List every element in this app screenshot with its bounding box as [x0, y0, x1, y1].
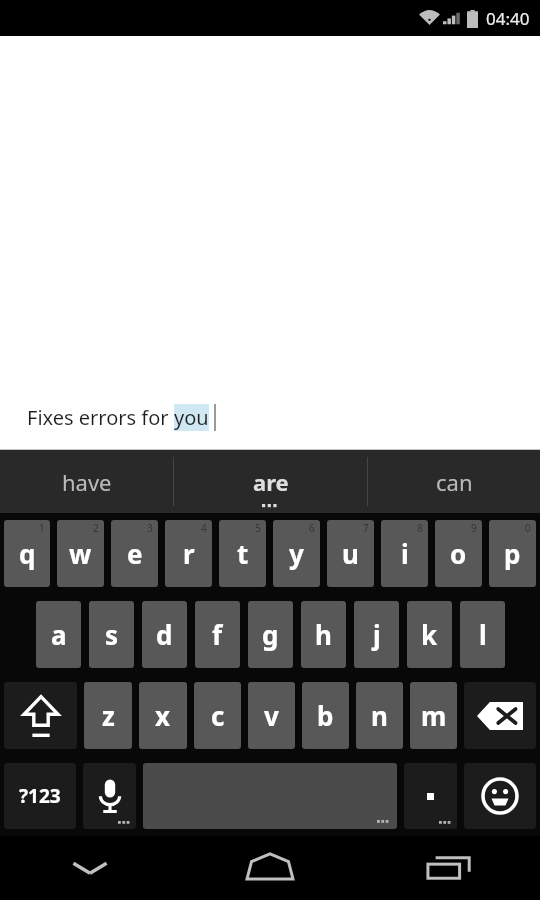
button[interactable]: s: [89, 601, 134, 668]
staticText: j: [373, 617, 381, 652]
staticText: e: [127, 536, 143, 571]
button[interactable]: m: [410, 682, 457, 749]
staticText: have: [62, 467, 112, 497]
staticText: 2: [93, 521, 99, 535]
button[interactable]: w: [57, 520, 104, 587]
button[interactable]: are: [174, 450, 367, 513]
staticText: m: [421, 698, 447, 733]
button[interactable]: v: [248, 682, 295, 749]
button[interactable]: h: [301, 601, 346, 668]
staticText: 5: [255, 521, 261, 535]
button[interactable]: Home: [180, 836, 360, 900]
staticText: r: [183, 536, 195, 571]
staticText: c: [211, 698, 225, 733]
staticText: q: [19, 536, 36, 571]
staticText: p: [504, 536, 521, 571]
button[interactable]: c: [194, 682, 241, 749]
staticText: 7: [363, 521, 369, 535]
button[interactable]: [404, 763, 457, 829]
button[interactable]: Recent apps: [360, 836, 540, 900]
staticText: 9: [471, 521, 477, 535]
staticText: a: [51, 617, 67, 652]
staticText: w: [69, 536, 92, 571]
button[interactable]: f: [195, 601, 240, 668]
button[interactable]: i: [381, 520, 428, 587]
button[interactable]: Shift: [4, 682, 77, 749]
button[interactable]: have: [0, 450, 173, 513]
staticText: u: [342, 536, 359, 571]
staticText: y: [289, 536, 304, 571]
staticText: h: [315, 617, 332, 652]
button[interactable]: r: [165, 520, 212, 587]
button[interactable]: a: [36, 601, 81, 668]
staticText: are: [253, 467, 289, 497]
button[interactable]: Emoji: [464, 763, 536, 829]
staticText: you: [174, 404, 209, 431]
staticText: 6: [309, 521, 315, 535]
button[interactable]: Space: [143, 763, 397, 829]
button[interactable]: t: [219, 520, 266, 587]
button[interactable]: l: [460, 601, 505, 668]
button[interactable]: ?123: [4, 763, 76, 829]
staticText: 1: [39, 521, 45, 535]
staticText: v: [264, 698, 279, 733]
staticText: g: [262, 617, 279, 652]
button[interactable]: g: [248, 601, 293, 668]
button[interactable]: b: [302, 682, 349, 749]
button[interactable]: Voice input: [83, 763, 136, 829]
button[interactable]: Hide keyboard: [0, 836, 180, 900]
button[interactable]: j: [354, 601, 399, 668]
staticText: n: [371, 698, 388, 733]
button[interactable]: can: [368, 450, 540, 513]
staticText: f: [212, 617, 223, 652]
staticText: s: [105, 617, 119, 652]
button[interactable]: d: [142, 601, 187, 668]
button[interactable]: k: [407, 601, 452, 668]
staticText: l: [479, 617, 487, 652]
button[interactable]: u: [327, 520, 374, 587]
staticText: b: [317, 698, 334, 733]
staticText: d: [156, 617, 173, 652]
staticText: i: [401, 536, 409, 571]
button[interactable]: y: [273, 520, 320, 587]
staticText: k: [421, 617, 438, 652]
staticText: o: [450, 536, 467, 571]
staticText: 3: [147, 521, 153, 535]
staticText: ?123: [19, 783, 61, 809]
staticText: 0: [525, 521, 531, 535]
button[interactable]: z: [84, 682, 132, 749]
staticText: can: [436, 467, 473, 497]
button[interactable]: Backspace: [464, 682, 536, 749]
button[interactable]: x: [139, 682, 187, 749]
button[interactable]: e: [111, 520, 158, 587]
staticText: t: [237, 536, 249, 571]
staticText: x: [155, 698, 171, 733]
staticText: 8: [417, 521, 423, 535]
button[interactable]: p: [489, 520, 536, 587]
button[interactable]: o: [435, 520, 482, 587]
button[interactable]: q: [4, 520, 50, 587]
staticText: 04:40: [486, 7, 530, 30]
staticText: Fixes errors for: [27, 404, 174, 431]
button[interactable]: n: [356, 682, 403, 749]
staticText: 4: [201, 521, 207, 535]
staticText: z: [102, 698, 115, 733]
